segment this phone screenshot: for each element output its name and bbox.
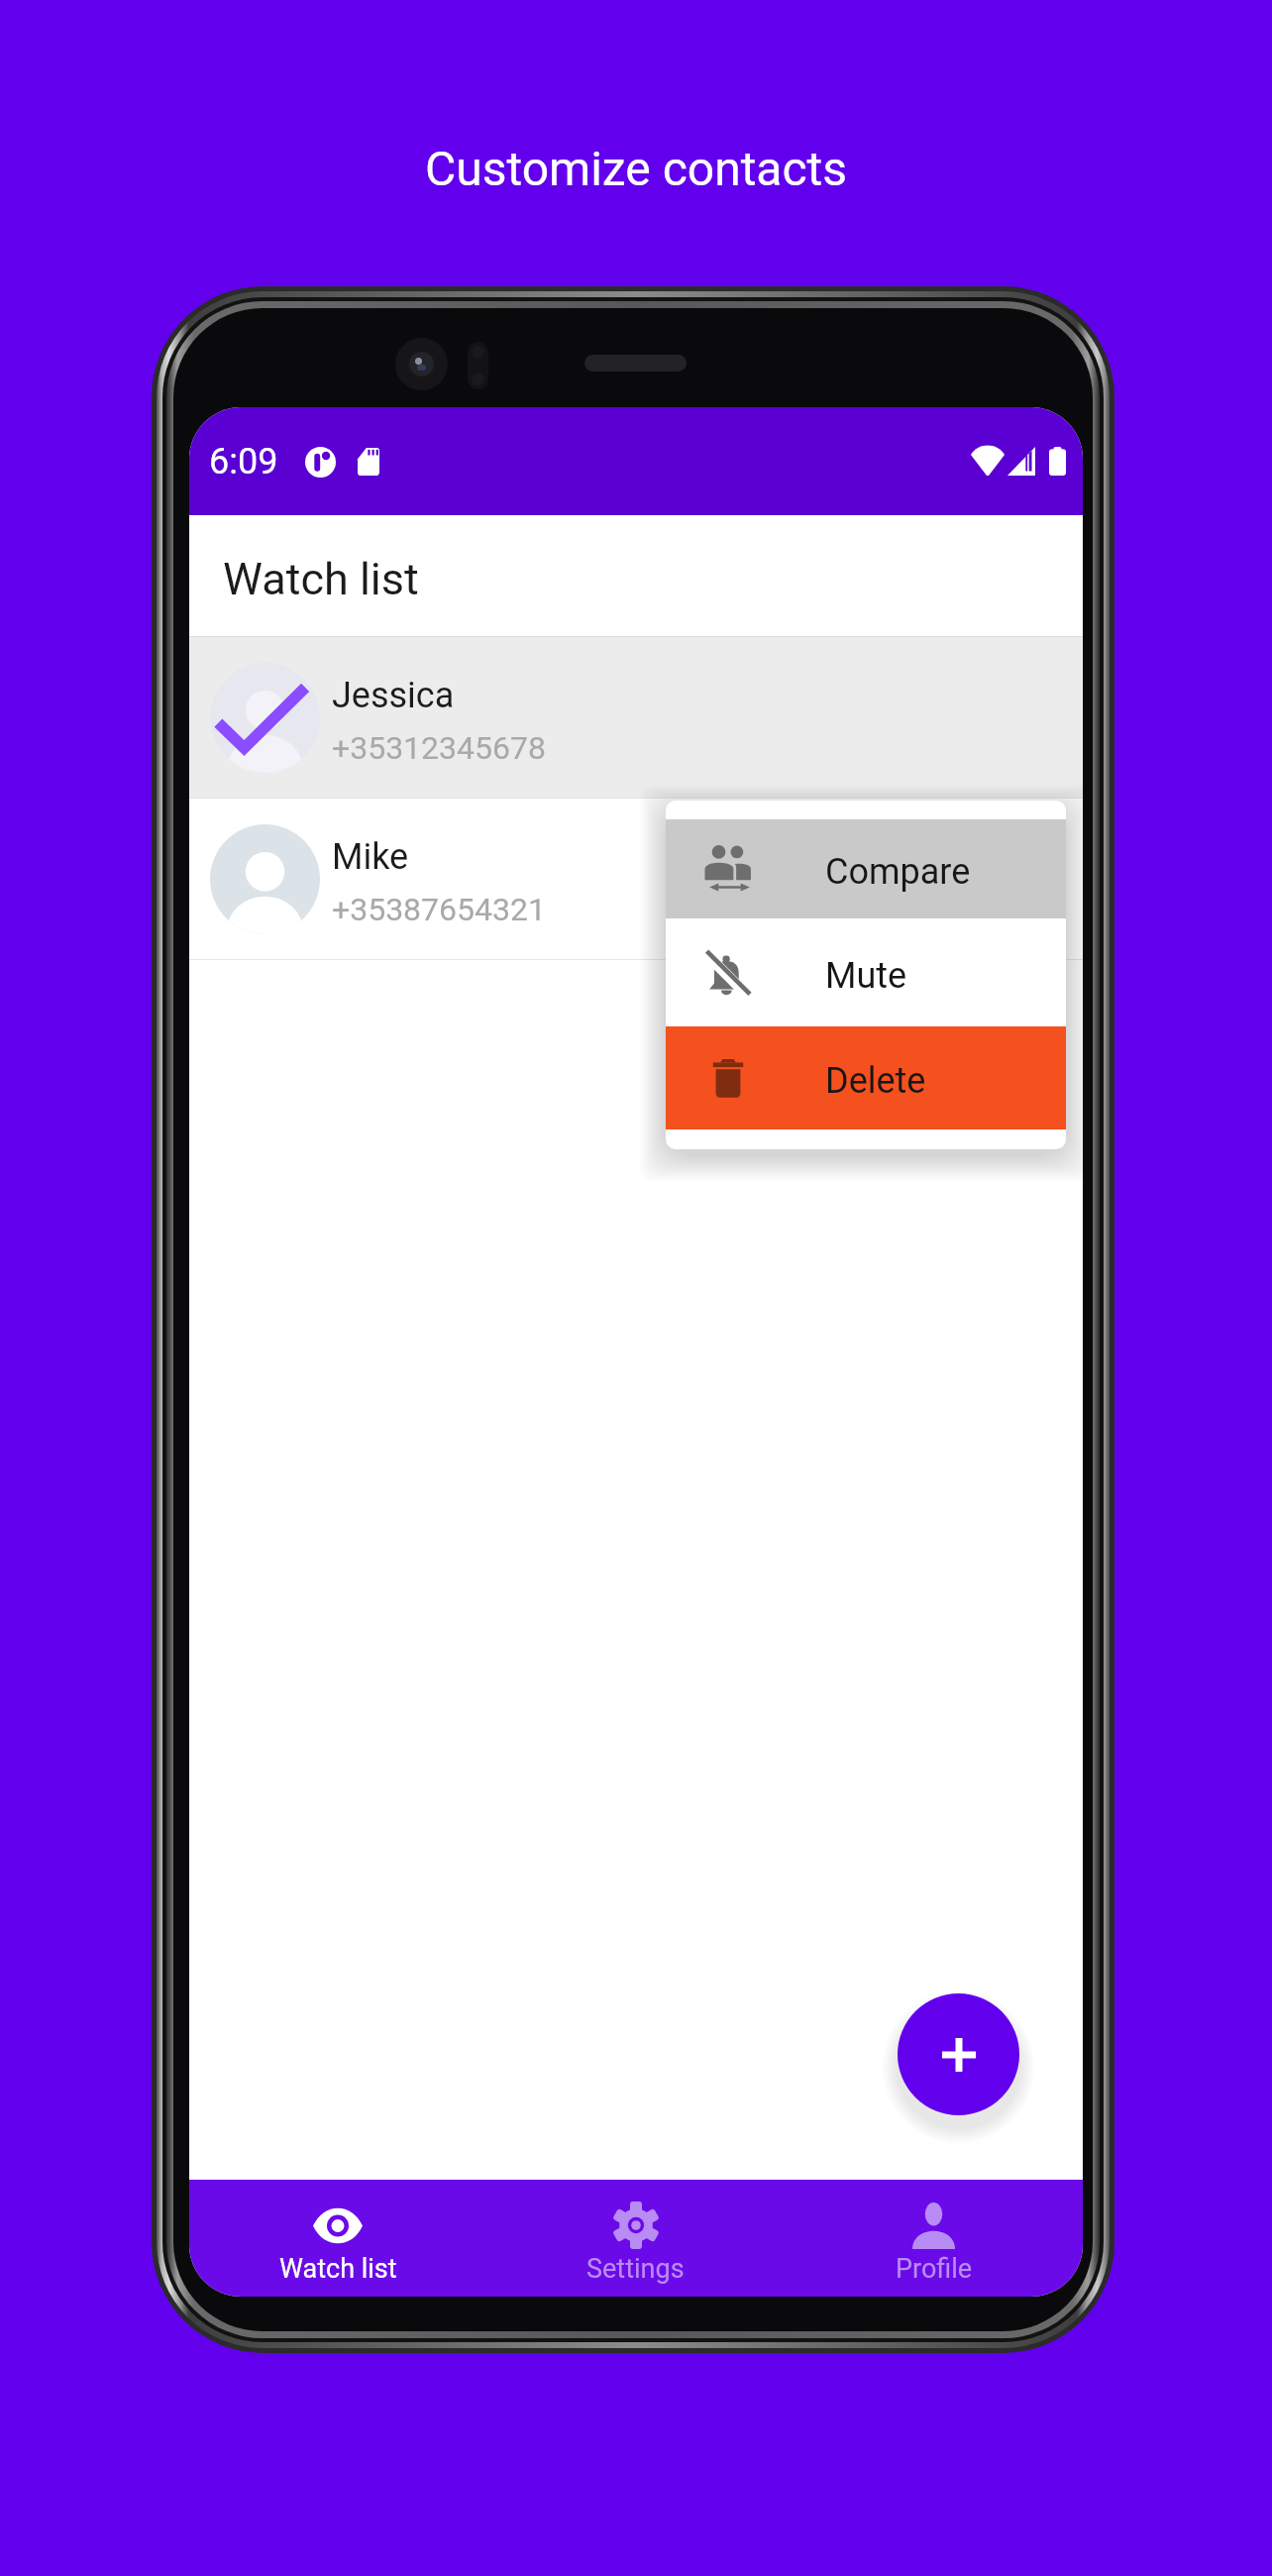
staticText: Compare (825, 851, 971, 893)
staticText: Settings (586, 2253, 685, 2285)
button[interactable]: Mike (189, 799, 1083, 959)
staticText: +35387654321 (332, 891, 546, 928)
staticText: Watch list (279, 2253, 397, 2285)
button[interactable]: Mute (666, 918, 1066, 1026)
button[interactable]: Delete (666, 1026, 1066, 1129)
staticText: Profile (896, 2253, 973, 2285)
button[interactable]: Watch list (189, 2180, 486, 2297)
staticText: Customize contacts (425, 141, 848, 196)
button[interactable]: Jessica (189, 637, 1083, 798)
staticText: Delete (825, 1060, 926, 1102)
button[interactable]: Compare (666, 819, 1066, 918)
staticText: Mute (825, 955, 907, 997)
staticText: +35312345678 (332, 729, 546, 767)
button[interactable]: Settings (486, 2180, 785, 2297)
staticText: Jessica (332, 675, 455, 716)
staticText: 6:09 (209, 441, 278, 483)
button[interactable]: Profile (785, 2180, 1083, 2297)
button[interactable]: Add contact (898, 1993, 1019, 2115)
staticText: Mike (332, 836, 409, 878)
staticText: Watch list (223, 553, 419, 605)
